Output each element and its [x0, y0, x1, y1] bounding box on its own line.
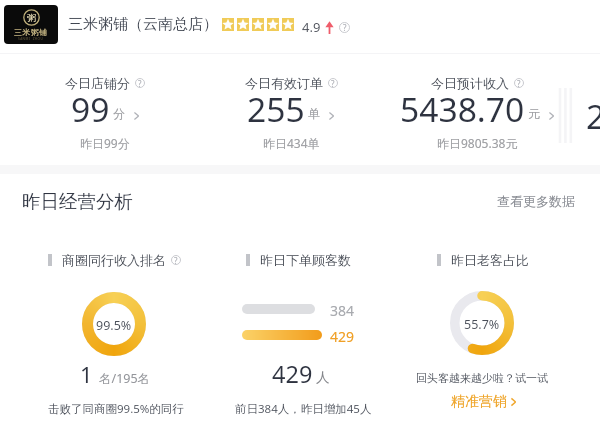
staticText: ? [138, 78, 142, 88]
staticText: 5438.70 [400, 86, 525, 132]
staticText: 今日有效订单 [245, 75, 323, 91]
staticText: 三米粥铺（云南总店） [68, 15, 218, 34]
staticText: 384 [330, 301, 355, 320]
staticText: 55.7% [464, 316, 500, 333]
button[interactable]: 查看更多数据 [491, 187, 581, 215]
staticText: ? [517, 78, 521, 88]
staticText: 1 [80, 359, 93, 389]
staticText: 人 [316, 369, 330, 386]
staticText: 今日店铺分 [65, 75, 130, 91]
staticText: 99 [71, 86, 110, 132]
staticText: 昨日434单 [263, 135, 320, 151]
button[interactable]: 今日预计收入 [384, 53, 570, 165]
staticText: 分 [113, 106, 125, 121]
staticText: 精准营销 [451, 393, 507, 411]
staticText: 429 [272, 358, 313, 390]
staticText: ? [174, 255, 178, 265]
staticText: 昨日老客占比 [451, 252, 529, 268]
staticText: 前日384人，昨日增加45人 [235, 401, 372, 417]
staticText: SANMI ZHOU [18, 37, 44, 41]
staticText: ? [343, 22, 347, 33]
staticText: 查看更多数据 [497, 193, 575, 209]
staticText: 单 [308, 106, 320, 121]
staticText: 昨日9805.38元 [437, 135, 518, 151]
staticText: 255 [247, 86, 305, 132]
staticText: 回头客越来越少啦？试一试 [416, 371, 548, 385]
staticText: 4.9 [302, 18, 321, 36]
button[interactable]: 精准营销 [451, 393, 517, 411]
staticText: 429 [330, 327, 355, 346]
staticText: 名/195名 [99, 370, 151, 387]
staticText: 粥 [27, 12, 36, 23]
staticText: 元 [528, 106, 540, 121]
button[interactable]: 今日店铺分 [12, 53, 198, 165]
staticText: ? [331, 78, 335, 88]
button[interactable]: Shop logo [4, 5, 58, 44]
staticText: 昨日经营分析 [22, 190, 133, 213]
staticText: 三米粥铺 [14, 27, 48, 37]
staticText: 昨日99分 [80, 135, 130, 151]
staticText: 2 [586, 93, 600, 139]
staticText: 今日预计收入 [431, 75, 509, 91]
staticText: 99.5% [96, 317, 132, 334]
staticText: 击败了同商圈99.5%的同行 [48, 401, 184, 417]
staticText: 商圈同行收入排名 [62, 252, 166, 268]
staticText: 昨日下单顾客数 [260, 252, 351, 268]
button[interactable]: 今日有效订单 [198, 53, 384, 165]
